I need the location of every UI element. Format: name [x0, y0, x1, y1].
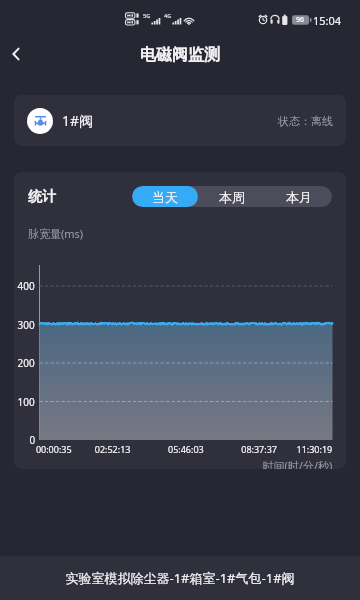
button[interactable]: 当天 — [132, 186, 198, 207]
staticText: 状态：离线 — [278, 114, 333, 128]
staticText: 实验室模拟除尘器-1#箱室-1#气包-1#阀 — [65, 569, 295, 587]
button[interactable]: 1#阀 — [14, 95, 346, 146]
staticText: 1#阀 — [62, 111, 94, 130]
staticText: 本月 — [286, 189, 312, 205]
button[interactable]: 本月 — [265, 186, 332, 207]
staticText: 脉宽量(ms) — [28, 226, 84, 241]
staticText: 本周 — [219, 189, 245, 205]
staticText: 当天 — [152, 189, 178, 205]
button[interactable]: 本周 — [198, 186, 265, 207]
staticText: 电磁阀监测 — [140, 45, 220, 65]
staticText: 统计 — [28, 188, 56, 206]
button[interactable]: Back — [0, 38, 32, 70]
